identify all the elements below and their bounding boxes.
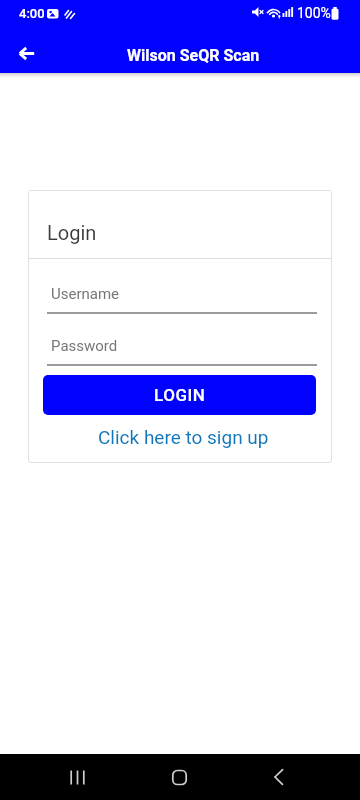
button[interactable]: Username [47, 270, 317, 314]
staticText: Password [51, 337, 118, 355]
staticText: Wilson SeQR Scan [127, 46, 260, 65]
staticText: LOGIN [154, 385, 206, 405]
button[interactable]: Click here to sign up [28, 421, 332, 453]
button[interactable] [159, 754, 199, 800]
button[interactable] [57, 754, 97, 800]
staticText: 4:00 [19, 6, 45, 21]
staticText: Login [47, 221, 97, 244]
button[interactable]: LOGIN [43, 375, 316, 415]
staticText: Username [51, 285, 120, 303]
staticText: 100% [297, 5, 331, 21]
staticText: Click here to sign up [98, 426, 269, 448]
button[interactable] [259, 754, 299, 800]
button[interactable]: Password [47, 322, 317, 366]
button[interactable] [8, 39, 46, 67]
